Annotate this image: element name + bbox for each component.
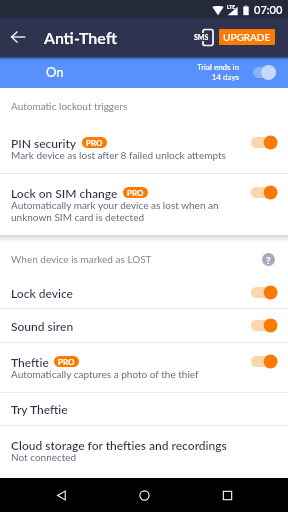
staticText: Not connected: [11, 451, 77, 463]
staticText: Trial ends in 14 days: [197, 62, 239, 82]
staticText: 07:00: [254, 3, 283, 16]
button[interactable]: Try Theftie: [0, 393, 288, 425]
button[interactable]: Sound siren: [0, 309, 288, 342]
staticText: ?: [266, 254, 271, 266]
staticText: On: [46, 64, 64, 80]
staticText: PRO: [86, 138, 103, 148]
staticText: Try Theftie: [11, 402, 68, 416]
staticText: PRO: [127, 188, 144, 198]
staticText: Anti-Theft: [44, 28, 117, 47]
staticText: PIN security: [11, 136, 77, 150]
button[interactable]: Theftie: [0, 343, 288, 392]
button[interactable]: Send SMS command: [186, 18, 218, 56]
button[interactable]: Help: [262, 253, 275, 266]
staticText: Sound siren: [11, 319, 74, 333]
button[interactable]: Home: [122, 478, 166, 512]
button[interactable]: On: [0, 56, 288, 88]
staticText: Automatically mark your device as lost w…: [11, 199, 219, 223]
staticText: Automatically captures a photo of the th…: [11, 368, 199, 380]
staticText: Cloud storage for thefties and recording…: [11, 438, 227, 452]
button[interactable]: Lock device: [0, 276, 288, 308]
button[interactable]: UPGRADE: [219, 29, 275, 45]
button[interactable]: Back: [39, 478, 83, 512]
staticText: Theftie: [11, 355, 49, 369]
staticText: PRO: [58, 357, 75, 367]
button[interactable]: Navigate up: [0, 18, 36, 56]
staticText: Mark device as lost after 8 failed unloc…: [11, 149, 226, 161]
staticText: SMS: [194, 33, 209, 41]
button[interactable]: Cloud storage for thefties and recording…: [0, 426, 288, 475]
button[interactable]: Lock on SIM change: [0, 174, 288, 235]
staticText: When device is marked as LOST: [11, 253, 152, 265]
staticText: Lock on SIM change: [11, 186, 118, 200]
staticText: LTE: [227, 4, 236, 10]
staticText: Lock device: [11, 286, 73, 300]
staticText: Automatic lockout triggers: [11, 100, 128, 112]
button[interactable]: PIN security: [0, 124, 288, 173]
button[interactable]: Recent apps: [205, 478, 249, 512]
staticText: UPGRADE: [223, 31, 271, 43]
